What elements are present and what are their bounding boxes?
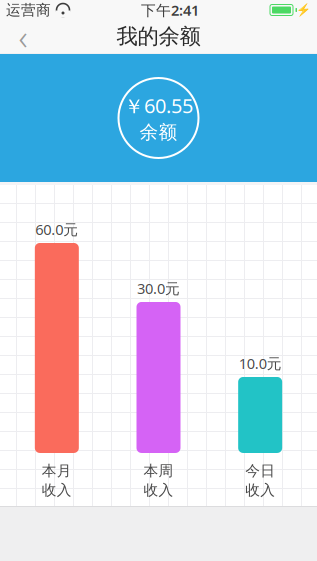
button[interactable]: 返回 xyxy=(6,20,40,52)
staticText: 收入 xyxy=(143,481,173,499)
staticText: 今日 xyxy=(245,462,275,480)
staticText: 余额 xyxy=(139,121,177,144)
staticText: 本月 xyxy=(42,462,72,480)
staticText: ⚡ xyxy=(296,3,311,17)
staticText: 我的余额 xyxy=(116,23,200,50)
staticText: ￥60.55 xyxy=(124,92,193,119)
staticText: 本周 xyxy=(143,462,173,480)
staticText: 收入 xyxy=(42,481,72,499)
staticText: 运营商 xyxy=(6,1,51,19)
staticText: 下午2:41 xyxy=(141,0,199,20)
staticText: 收入 xyxy=(245,481,275,499)
staticText: ‹ xyxy=(18,13,27,59)
staticText: 60.0元 xyxy=(35,219,78,239)
staticText: 10.0元 xyxy=(239,353,282,373)
staticText: 30.0元 xyxy=(137,278,180,298)
